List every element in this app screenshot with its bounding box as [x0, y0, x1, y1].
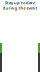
staticText: Stay up to date [5, 0, 35, 5]
staticText: during the event [2, 5, 37, 11]
